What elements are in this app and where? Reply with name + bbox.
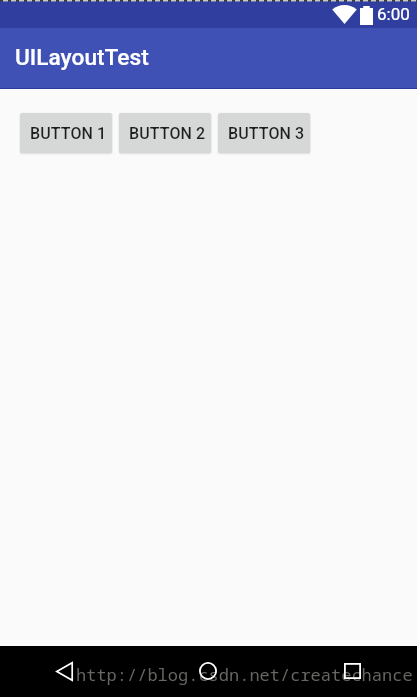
staticText: BUTTON 1 bbox=[30, 124, 107, 143]
button[interactable]: Back bbox=[40, 647, 88, 695]
staticText: BUTTON 3 bbox=[228, 124, 305, 143]
button[interactable]: BUTTON 1 bbox=[20, 113, 112, 153]
staticText: 6:00 bbox=[377, 4, 410, 24]
staticText: UILayoutTest bbox=[15, 44, 149, 71]
staticText: http://blog.csdn.net/createchance bbox=[76, 663, 413, 686]
button[interactable]: Home bbox=[184, 647, 232, 695]
staticText: BUTTON 2 bbox=[129, 124, 206, 143]
button[interactable]: BUTTON 2 bbox=[119, 113, 211, 153]
button[interactable]: Recent apps bbox=[328, 647, 376, 695]
other: Wi-Fi signal bbox=[333, 5, 356, 24]
other: Battery full bbox=[360, 6, 373, 25]
button[interactable]: BUTTON 3 bbox=[218, 113, 310, 153]
